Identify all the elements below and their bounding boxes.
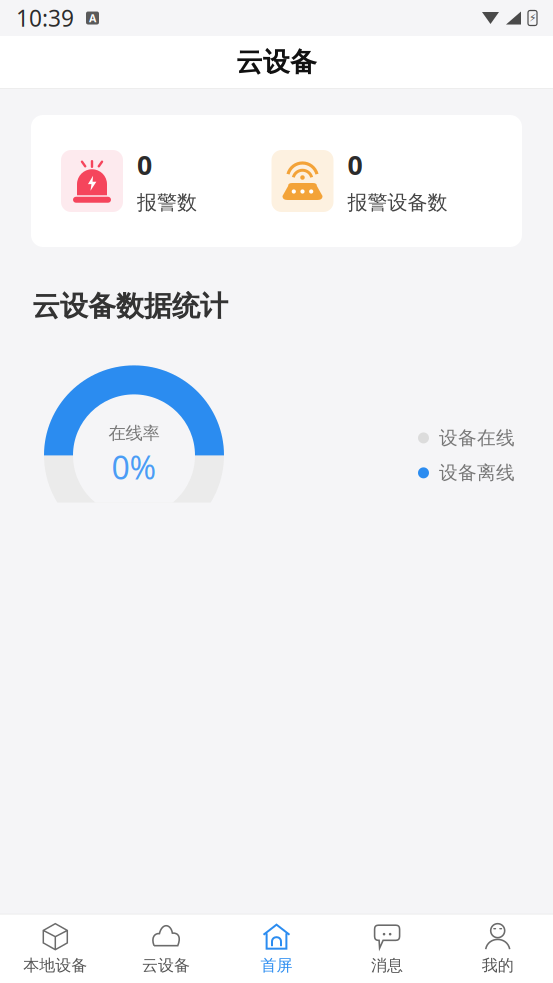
staticText: 云设备数据统计: [32, 289, 228, 323]
staticText: 设备离线: [439, 461, 515, 484]
button[interactable]: 我的: [442, 915, 553, 983]
staticText: A: [89, 11, 96, 25]
staticText: 首屏: [260, 956, 292, 975]
staticText: 云设备: [236, 46, 317, 78]
button[interactable]: 首屏: [221, 915, 332, 983]
button[interactable]: 消息: [332, 915, 442, 983]
staticText: 10:39: [16, 3, 74, 33]
button[interactable]: 本地设备: [0, 915, 111, 983]
button[interactable]: 0: [61, 147, 197, 215]
button[interactable]: 云设备: [111, 915, 221, 983]
staticText: 本地设备: [23, 956, 87, 975]
staticText: 在线率: [108, 422, 159, 444]
staticText: 0: [137, 147, 152, 182]
staticText: 消息: [371, 956, 403, 975]
staticText: ⚡︎: [529, 12, 536, 24]
button[interactable]: 0: [271, 147, 447, 215]
staticText: 我的: [482, 956, 514, 975]
staticText: 报警数: [137, 190, 197, 215]
staticText: 云设备: [142, 956, 190, 975]
staticText: 0%: [111, 446, 156, 488]
staticText: 报警设备数: [347, 190, 447, 215]
staticText: 0: [347, 147, 362, 182]
staticText: 设备在线: [439, 426, 515, 449]
